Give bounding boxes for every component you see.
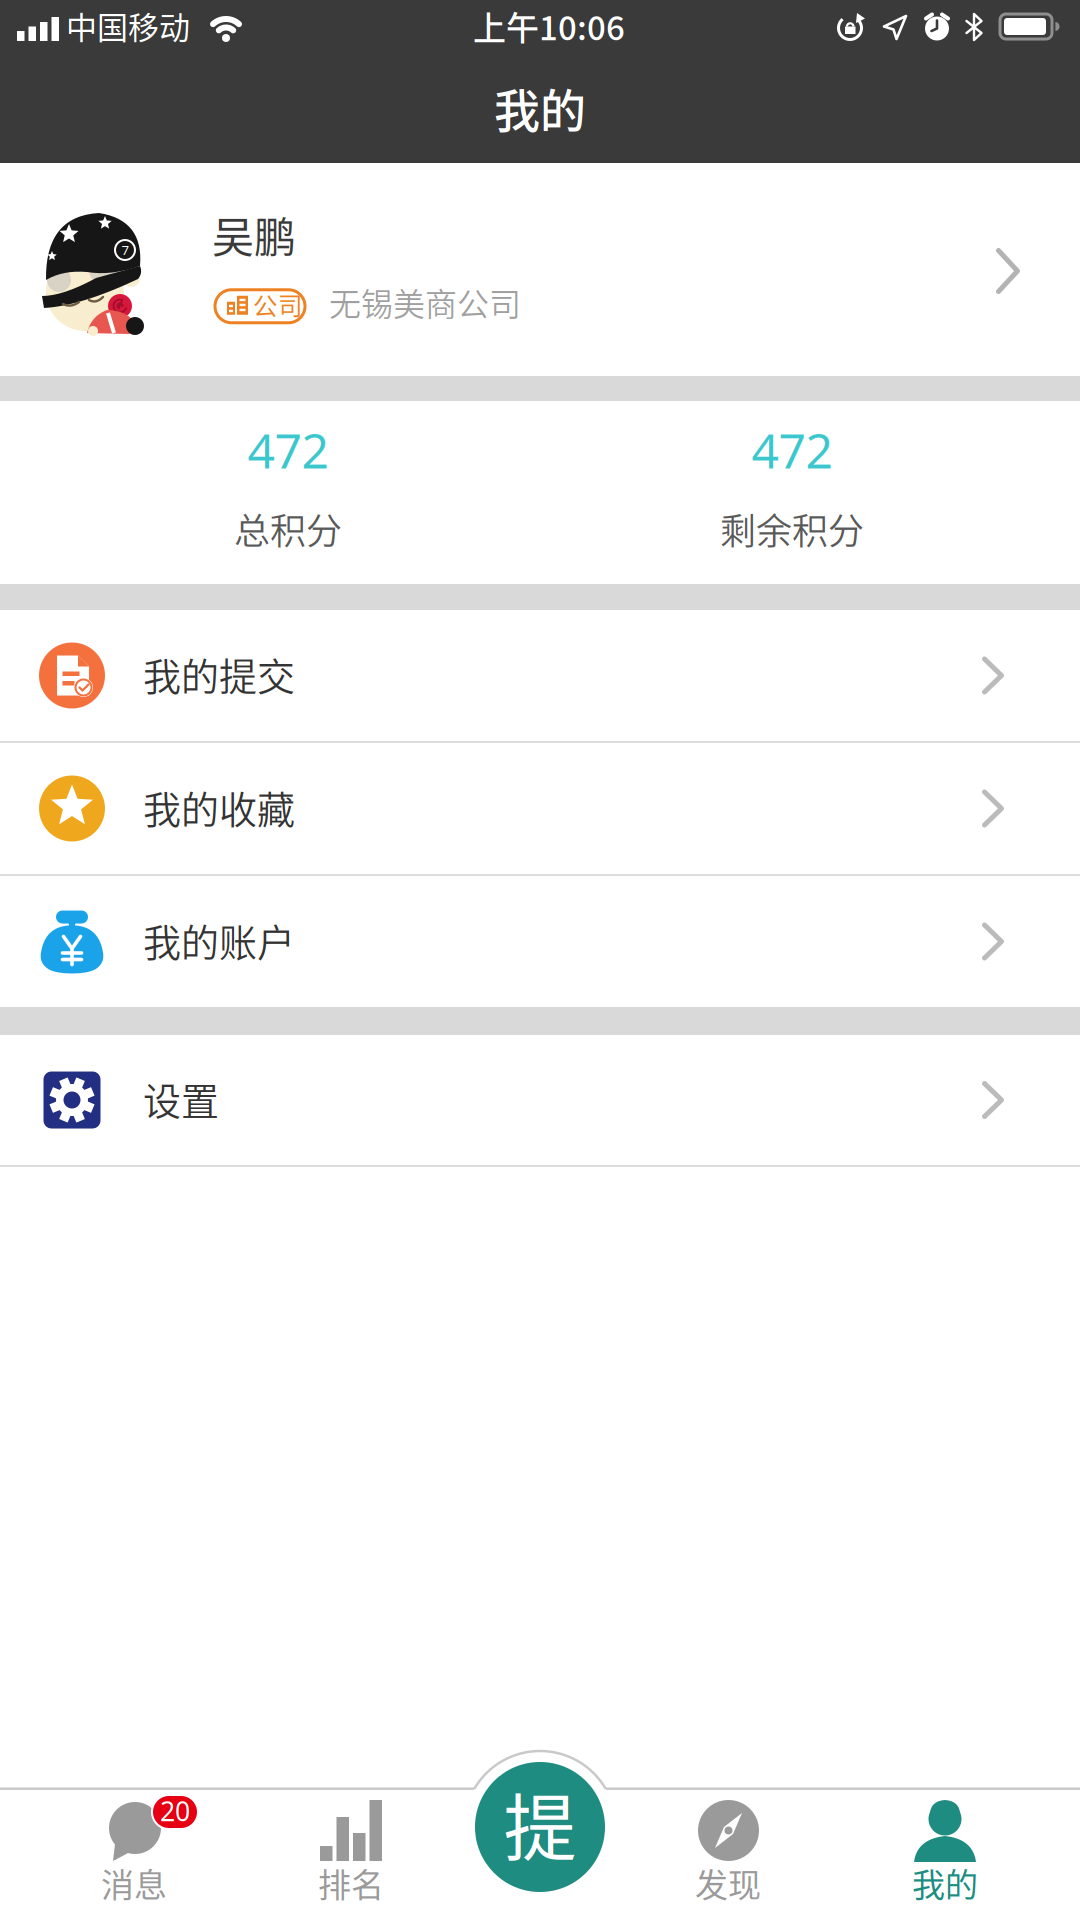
- staticText: 我的账户: [143, 912, 295, 967]
- staticText: 剩余积分: [720, 503, 864, 555]
- staticText: 总积分: [234, 503, 342, 555]
- staticText: 消息: [101, 1859, 167, 1907]
- button[interactable]: 我的: [855, 1789, 1035, 1920]
- button[interactable]: 我的账户: [0, 876, 1080, 1007]
- staticText: 我的提交: [143, 646, 295, 701]
- button[interactable]: 我的提交: [0, 610, 1080, 741]
- staticText: 无锡美商公司: [329, 279, 521, 325]
- staticText: 我的: [494, 74, 586, 141]
- button[interactable]: 排名: [261, 1789, 441, 1920]
- staticText: 我的: [912, 1859, 978, 1907]
- button[interactable]: 提: [475, 1762, 605, 1892]
- staticText: 公司: [253, 287, 303, 322]
- staticText: 提: [503, 1770, 576, 1876]
- staticText: 中国移动: [66, 3, 190, 48]
- button[interactable]: 20: [44, 1789, 224, 1920]
- staticText: 发现: [695, 1859, 761, 1907]
- staticText: 7: [121, 241, 129, 259]
- staticText: 472: [247, 418, 328, 482]
- button[interactable]: 设置: [0, 1035, 1080, 1165]
- staticText: 我的收藏: [143, 779, 295, 834]
- staticText: 吴鹏: [212, 204, 296, 265]
- button[interactable]: 7: [0, 163, 1080, 376]
- staticText: 20: [160, 1793, 190, 1829]
- staticText: 排名: [318, 1859, 384, 1907]
- button[interactable]: 我的收藏: [0, 743, 1080, 874]
- staticText: 设置: [143, 1071, 219, 1126]
- button[interactable]: 发现: [638, 1789, 818, 1920]
- staticText: 472: [751, 418, 832, 482]
- staticText: 上午10:06: [473, 2, 625, 50]
